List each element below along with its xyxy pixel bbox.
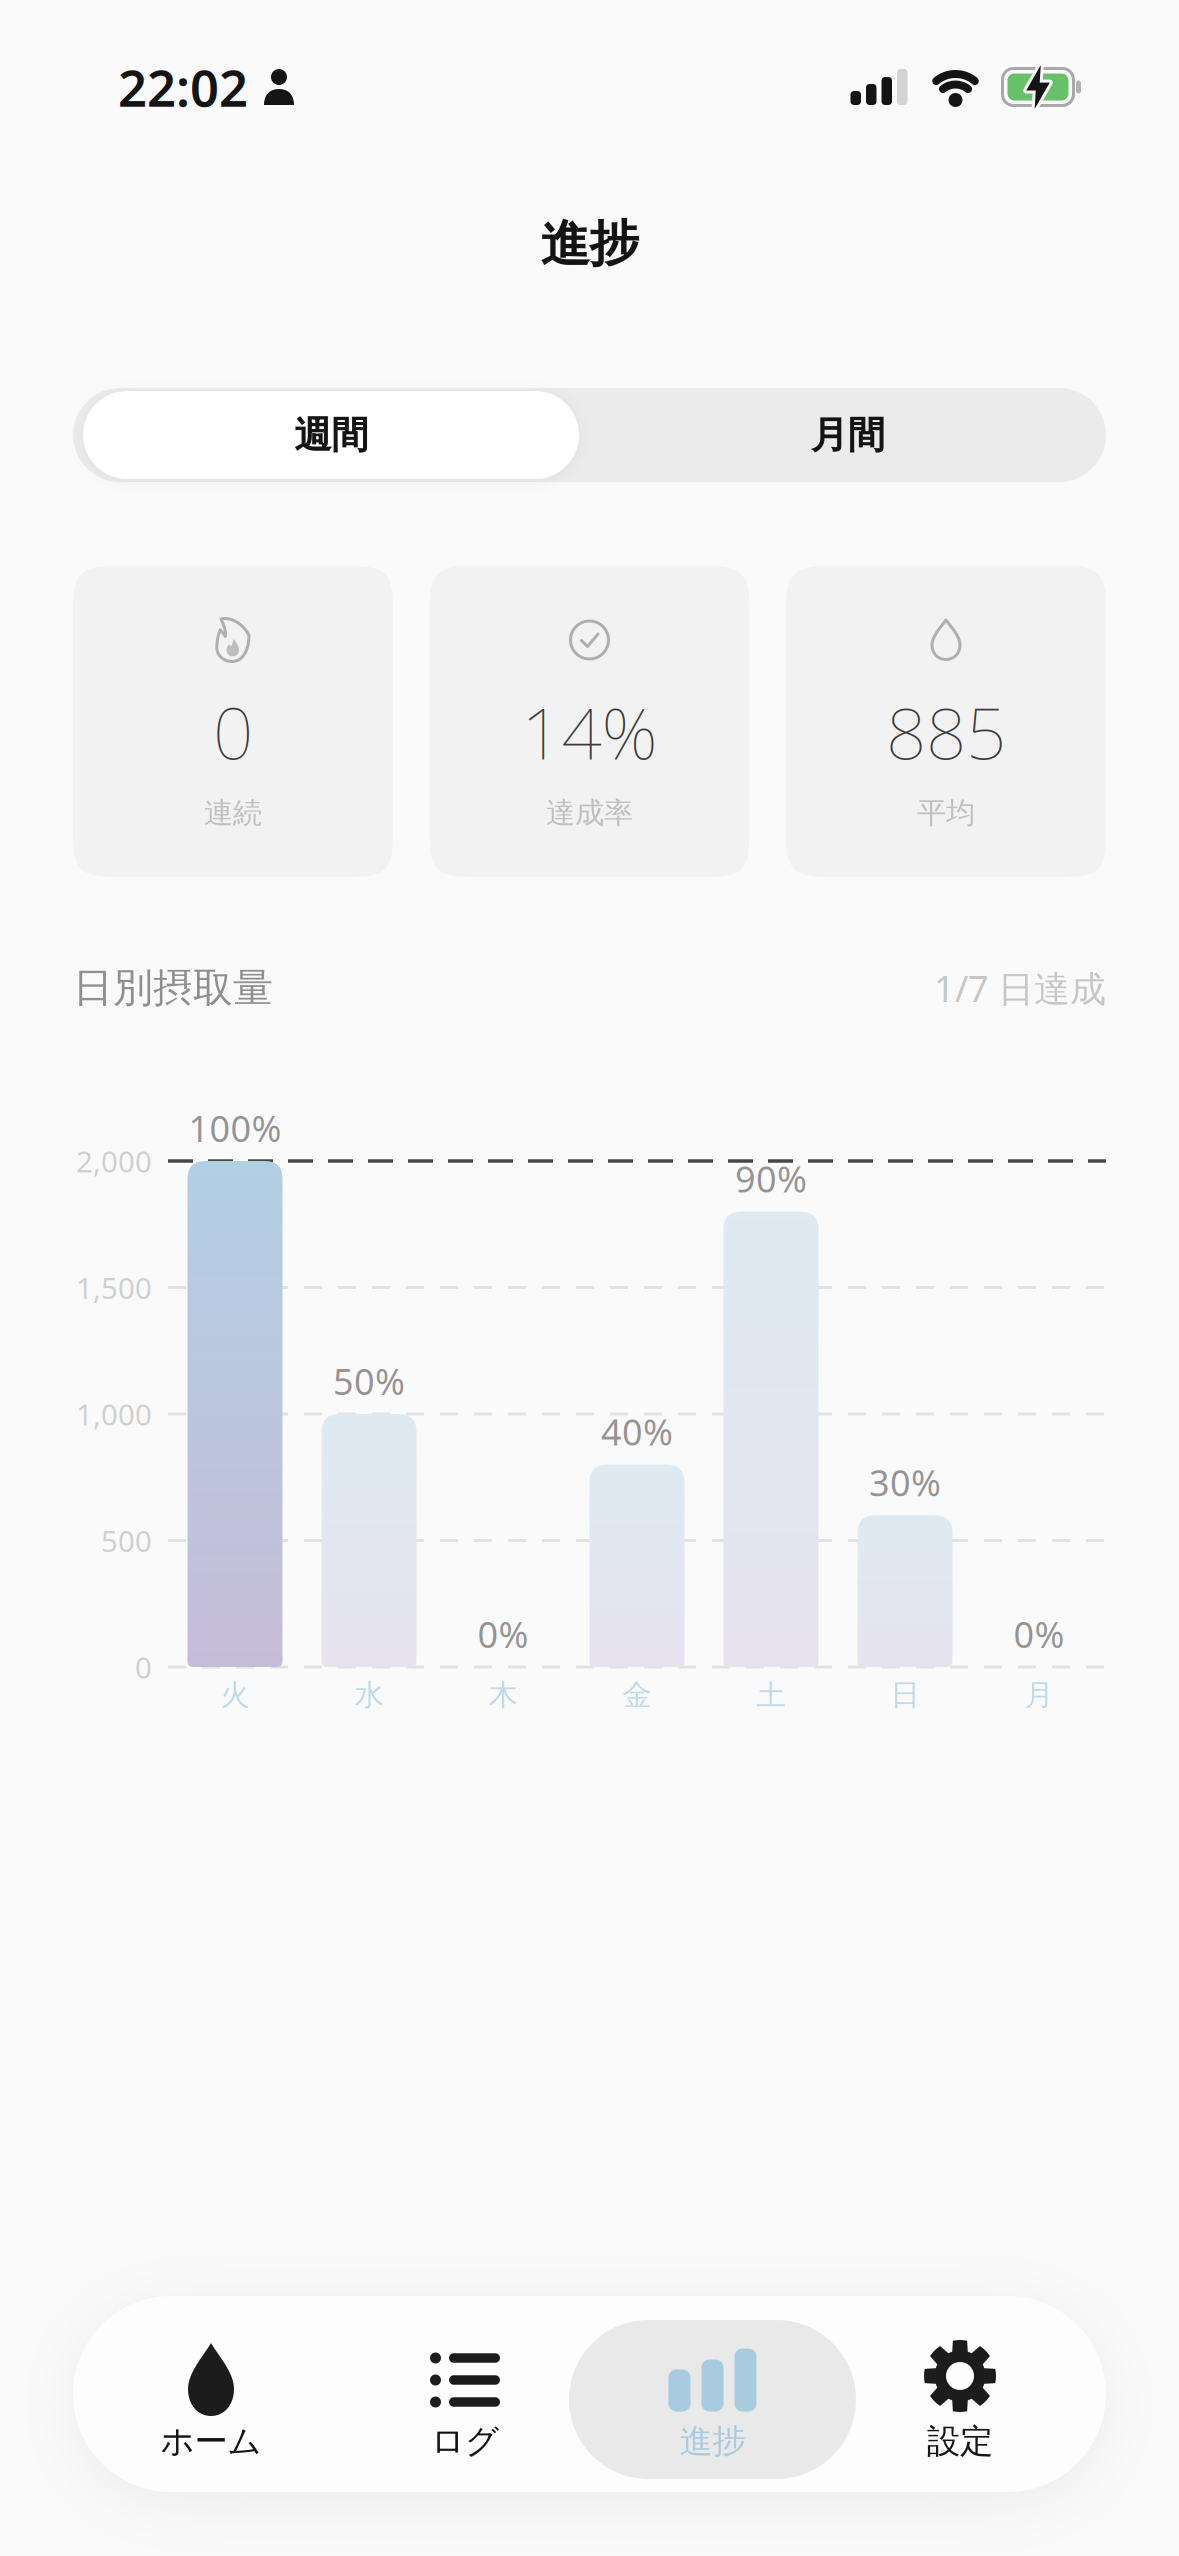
staticText: 週間 (294, 412, 368, 458)
staticText: 2,000 (76, 1141, 152, 1180)
staticText: 月間 (811, 412, 885, 458)
staticText: 1,500 (76, 1268, 152, 1307)
staticText: 22:02 (118, 53, 248, 121)
staticText: 進捗 (540, 214, 638, 274)
staticText: 土 (756, 1677, 785, 1713)
staticText: 火 (220, 1677, 249, 1713)
button[interactable]: ホーム (160, 2343, 261, 2458)
button[interactable]: 週間 (73, 388, 589, 482)
staticText: 0 (213, 685, 253, 779)
staticText: 100% (188, 1104, 281, 1152)
staticText: ホーム (160, 2421, 261, 2462)
button[interactable]: 月間 (589, 388, 1106, 482)
staticText: 885 (886, 685, 1006, 779)
staticText: 連続 (204, 795, 262, 831)
button[interactable]: 設定 (924, 2343, 996, 2458)
button[interactable]: 進捗 (668, 2343, 756, 2458)
staticText: 0% (477, 1610, 528, 1658)
staticText: 日別摂取量 (73, 963, 273, 1012)
staticText: 30% (869, 1458, 941, 1506)
button[interactable]: ログ (430, 2343, 500, 2458)
staticText: 14% (521, 685, 657, 779)
staticText: 日 (890, 1677, 919, 1713)
staticText: 月 (1024, 1677, 1053, 1713)
staticText: 90% (735, 1155, 807, 1202)
staticText: 進捗 (679, 2421, 745, 2462)
staticText: 0 (135, 1647, 152, 1686)
staticText: 0% (1013, 1610, 1064, 1658)
staticText: 500 (101, 1521, 152, 1560)
staticText: 達成率 (546, 795, 633, 831)
staticText: 平均 (917, 795, 975, 831)
staticText: 50% (333, 1357, 405, 1405)
staticText: 1,000 (76, 1394, 152, 1433)
staticText: 40% (601, 1408, 673, 1455)
staticText: ログ (431, 2421, 499, 2462)
staticText: 金 (622, 1677, 651, 1713)
staticText: 木 (488, 1677, 517, 1713)
staticText: 水 (354, 1677, 383, 1713)
staticText: 設定 (927, 2421, 993, 2462)
staticText: 1/7 日達成 (934, 964, 1106, 1012)
